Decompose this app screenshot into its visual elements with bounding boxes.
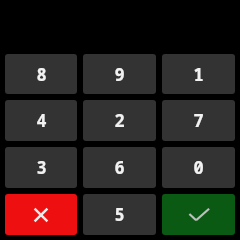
button[interactable]: 7 (162, 100, 235, 141)
button[interactable]: Cancel (5, 194, 77, 235)
button[interactable]: 4 (5, 100, 77, 141)
staticText: 0 (193, 156, 204, 179)
staticText: 4 (36, 109, 47, 132)
staticText: 3 (36, 156, 47, 179)
button[interactable]: Confirm (162, 194, 235, 235)
staticText: 2 (114, 109, 125, 132)
button[interactable]: 2 (83, 100, 156, 141)
staticText: 6 (114, 156, 125, 179)
staticText: 9 (114, 63, 125, 86)
button[interactable]: 0 (162, 147, 235, 188)
button[interactable]: 3 (5, 147, 77, 188)
staticText: 8 (36, 63, 47, 86)
button[interactable]: 6 (83, 147, 156, 188)
button[interactable]: 9 (83, 54, 156, 94)
button[interactable]: 8 (5, 54, 77, 94)
button[interactable]: 5 (83, 194, 156, 235)
staticText: 7 (193, 109, 204, 132)
button[interactable]: 1 (162, 54, 235, 94)
staticText: 5 (114, 203, 125, 226)
staticText: 1 (193, 63, 204, 86)
